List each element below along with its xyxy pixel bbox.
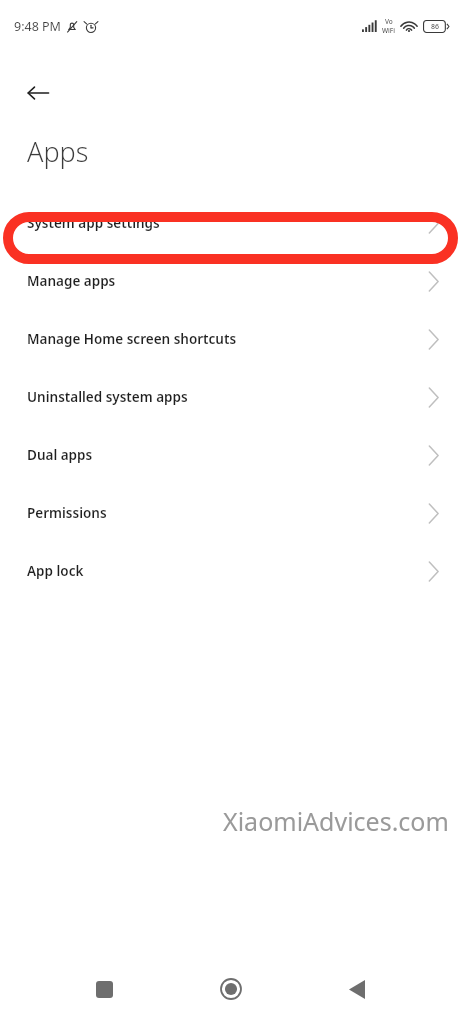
staticText: Manage Home screen shortcuts <box>27 330 237 348</box>
button[interactable]: Back <box>16 71 60 115</box>
button[interactable]: Permissions <box>0 484 461 542</box>
staticText: System app settings <box>27 214 160 232</box>
staticText: Vo <box>385 17 393 26</box>
staticText: App lock <box>27 562 84 580</box>
staticText: Uninstalled system apps <box>27 388 188 406</box>
button[interactable]: Manage Home screen shortcuts <box>0 310 461 368</box>
button[interactable]: Recent apps <box>81 966 127 1012</box>
button[interactable]: Dual apps <box>0 426 461 484</box>
staticText: Permissions <box>27 504 107 522</box>
button[interactable]: Back <box>334 966 380 1012</box>
staticText: XiaomiAdvices.com <box>223 804 449 838</box>
button[interactable]: Manage apps <box>0 252 461 310</box>
staticText: Manage apps <box>27 272 116 290</box>
button[interactable]: App lock <box>0 542 461 600</box>
button[interactable]: System app settings <box>0 194 461 252</box>
staticText: 9:48 PM <box>14 18 61 35</box>
staticText: WiFi <box>382 26 396 35</box>
button[interactable]: Uninstalled system apps <box>0 368 461 426</box>
staticText: Apps <box>27 133 89 170</box>
button[interactable]: Home <box>208 966 254 1012</box>
staticText: 86 <box>431 22 440 32</box>
staticText: Dual apps <box>27 446 93 464</box>
